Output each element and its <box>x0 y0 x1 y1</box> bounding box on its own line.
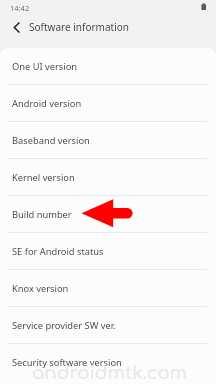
staticText: Service provider SW ver. <box>12 319 116 332</box>
staticText: SE for Android status <box>12 245 104 258</box>
staticText: Android version <box>12 97 82 110</box>
button[interactable]: Navigate up <box>8 19 25 36</box>
button[interactable]: SE for Android status <box>0 233 216 269</box>
staticText: One UI version <box>12 60 78 73</box>
button[interactable]: Knox version <box>0 270 216 306</box>
button[interactable]: One UI version <box>0 48 216 84</box>
staticText: Knox version <box>12 282 69 295</box>
other: Battery <box>200 2 208 11</box>
staticText: Baseband version <box>12 134 90 147</box>
staticText: Kernel version <box>12 171 75 184</box>
staticText: Build number <box>12 208 72 221</box>
button[interactable]: Android version <box>0 85 216 121</box>
button[interactable]: Baseband version <box>0 122 216 158</box>
staticText: Security software version <box>12 356 122 369</box>
staticText: androidmtk.com <box>32 363 187 383</box>
button[interactable]: Security software version <box>0 344 216 380</box>
staticText: 14:42 <box>10 3 30 13</box>
button[interactable]: Service provider SW ver. <box>0 307 216 343</box>
button[interactable]: Build number <box>0 196 216 232</box>
button[interactable]: Kernel version <box>0 159 216 195</box>
staticText: Software information <box>29 20 129 34</box>
